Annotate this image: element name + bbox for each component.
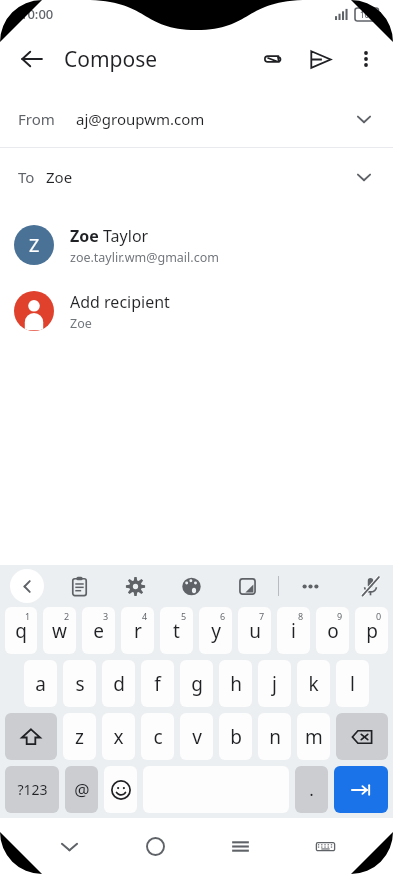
- staticText: r: [134, 618, 142, 644]
- button[interactable]: .: [295, 766, 328, 813]
- button[interactable]: Settings: [122, 573, 148, 599]
- staticText: From: [18, 109, 55, 129]
- button[interactable]: t: [160, 607, 193, 654]
- staticText: Zoe: [70, 315, 92, 332]
- button[interactable]: q: [5, 607, 37, 654]
- staticText: i: [291, 618, 296, 644]
- staticText: m: [305, 724, 323, 750]
- button[interactable]: Z: [0, 216, 393, 274]
- staticText: v: [192, 724, 202, 750]
- staticText: zoe.taylir.wm@gmail.com: [70, 249, 219, 266]
- button[interactable]: Back: [10, 569, 44, 603]
- button[interactable]: i: [277, 607, 310, 654]
- button[interactable]: Add recipient: [0, 282, 393, 340]
- button[interactable]: j: [258, 660, 291, 707]
- button[interactable]: To: [0, 148, 393, 206]
- button[interactable]: w: [43, 607, 76, 654]
- button[interactable]: More: [297, 573, 323, 599]
- button[interactable]: y: [199, 607, 232, 654]
- staticText: 7: [259, 610, 265, 622]
- staticText: x: [113, 724, 124, 750]
- button[interactable]: Back: [8, 35, 56, 83]
- button[interactable]: Switch keyboard: [302, 823, 348, 869]
- staticText: @: [74, 778, 90, 801]
- button[interactable]: x: [102, 713, 135, 760]
- staticText: z: [75, 724, 84, 750]
- button[interactable]: m: [297, 713, 330, 760]
- button[interactable]: Emoji: [104, 766, 137, 813]
- staticText: 4: [142, 610, 148, 622]
- button[interactable]: o: [316, 607, 349, 654]
- button[interactable]: Voice input off: [357, 573, 383, 599]
- staticText: ?123: [17, 780, 48, 799]
- button[interactable]: k: [297, 660, 330, 707]
- button[interactable]: @: [65, 766, 98, 813]
- staticText: n: [269, 724, 281, 750]
- button[interactable]: Attach file: [251, 36, 297, 82]
- staticText: w: [52, 618, 67, 644]
- button[interactable]: h: [219, 660, 252, 707]
- staticText: e: [93, 618, 104, 644]
- staticText: 10:00: [20, 5, 54, 23]
- button[interactable]: s: [63, 660, 96, 707]
- button[interactable]: Resize keyboard: [234, 573, 260, 599]
- staticText: Compose: [64, 45, 158, 74]
- staticText: t: [173, 618, 180, 644]
- button[interactable]: Clipboard: [66, 573, 92, 599]
- button[interactable]: Backspace: [336, 713, 388, 760]
- staticText: s: [75, 671, 85, 697]
- staticText: Zoe: [70, 225, 103, 247]
- staticText: Taylor: [103, 225, 149, 247]
- button[interactable]: r: [121, 607, 154, 654]
- staticText: 100: [360, 9, 374, 20]
- staticText: 1: [25, 610, 31, 622]
- staticText: c: [153, 724, 163, 750]
- button[interactable]: l: [336, 660, 369, 707]
- button[interactable]: b: [219, 713, 252, 760]
- staticText: Z: [29, 233, 40, 258]
- staticText: p: [366, 618, 378, 644]
- staticText: 5: [181, 610, 187, 622]
- staticText: q: [15, 618, 27, 644]
- button[interactable]: a: [24, 660, 57, 707]
- button[interactable]: e: [82, 607, 115, 654]
- staticText: 6: [220, 610, 226, 622]
- button[interactable]: Recent apps: [217, 823, 263, 869]
- button[interactable]: Shift: [5, 713, 57, 760]
- button[interactable]: Next: [334, 766, 388, 813]
- button[interactable]: f: [141, 660, 174, 707]
- staticText: aj@groupwm.com: [76, 109, 205, 129]
- staticText: y: [211, 618, 221, 644]
- staticText: .: [309, 778, 314, 801]
- staticText: 9: [337, 610, 343, 622]
- staticText: h: [230, 671, 242, 697]
- button[interactable]: Send: [297, 36, 343, 82]
- button[interactable]: Theme: [178, 573, 204, 599]
- staticText: k: [308, 671, 319, 697]
- staticText: g: [191, 671, 203, 697]
- staticText: f: [154, 671, 161, 697]
- button[interactable]: More options: [343, 36, 389, 82]
- button[interactable]: u: [238, 607, 271, 654]
- staticText: Zoe: [46, 167, 73, 187]
- staticText: 8: [298, 610, 304, 622]
- staticText: u: [249, 618, 261, 644]
- button[interactable]: Home: [132, 823, 178, 869]
- staticText: 0: [376, 610, 382, 622]
- staticText: To: [18, 167, 35, 187]
- button[interactable]: From: [0, 90, 393, 147]
- staticText: d: [113, 671, 125, 697]
- staticText: 3: [103, 610, 109, 622]
- staticText: b: [230, 724, 242, 750]
- button[interactable]: g: [180, 660, 213, 707]
- button[interactable]: p: [355, 607, 388, 654]
- button[interactable]: z: [63, 713, 96, 760]
- button[interactable]: v: [180, 713, 213, 760]
- button[interactable]: n: [258, 713, 291, 760]
- staticText: l: [350, 671, 355, 697]
- button[interactable]: ?123: [5, 766, 59, 813]
- button[interactable]: d: [102, 660, 135, 707]
- button[interactable]: Hide keyboard: [46, 823, 92, 869]
- button[interactable]: c: [141, 713, 174, 760]
